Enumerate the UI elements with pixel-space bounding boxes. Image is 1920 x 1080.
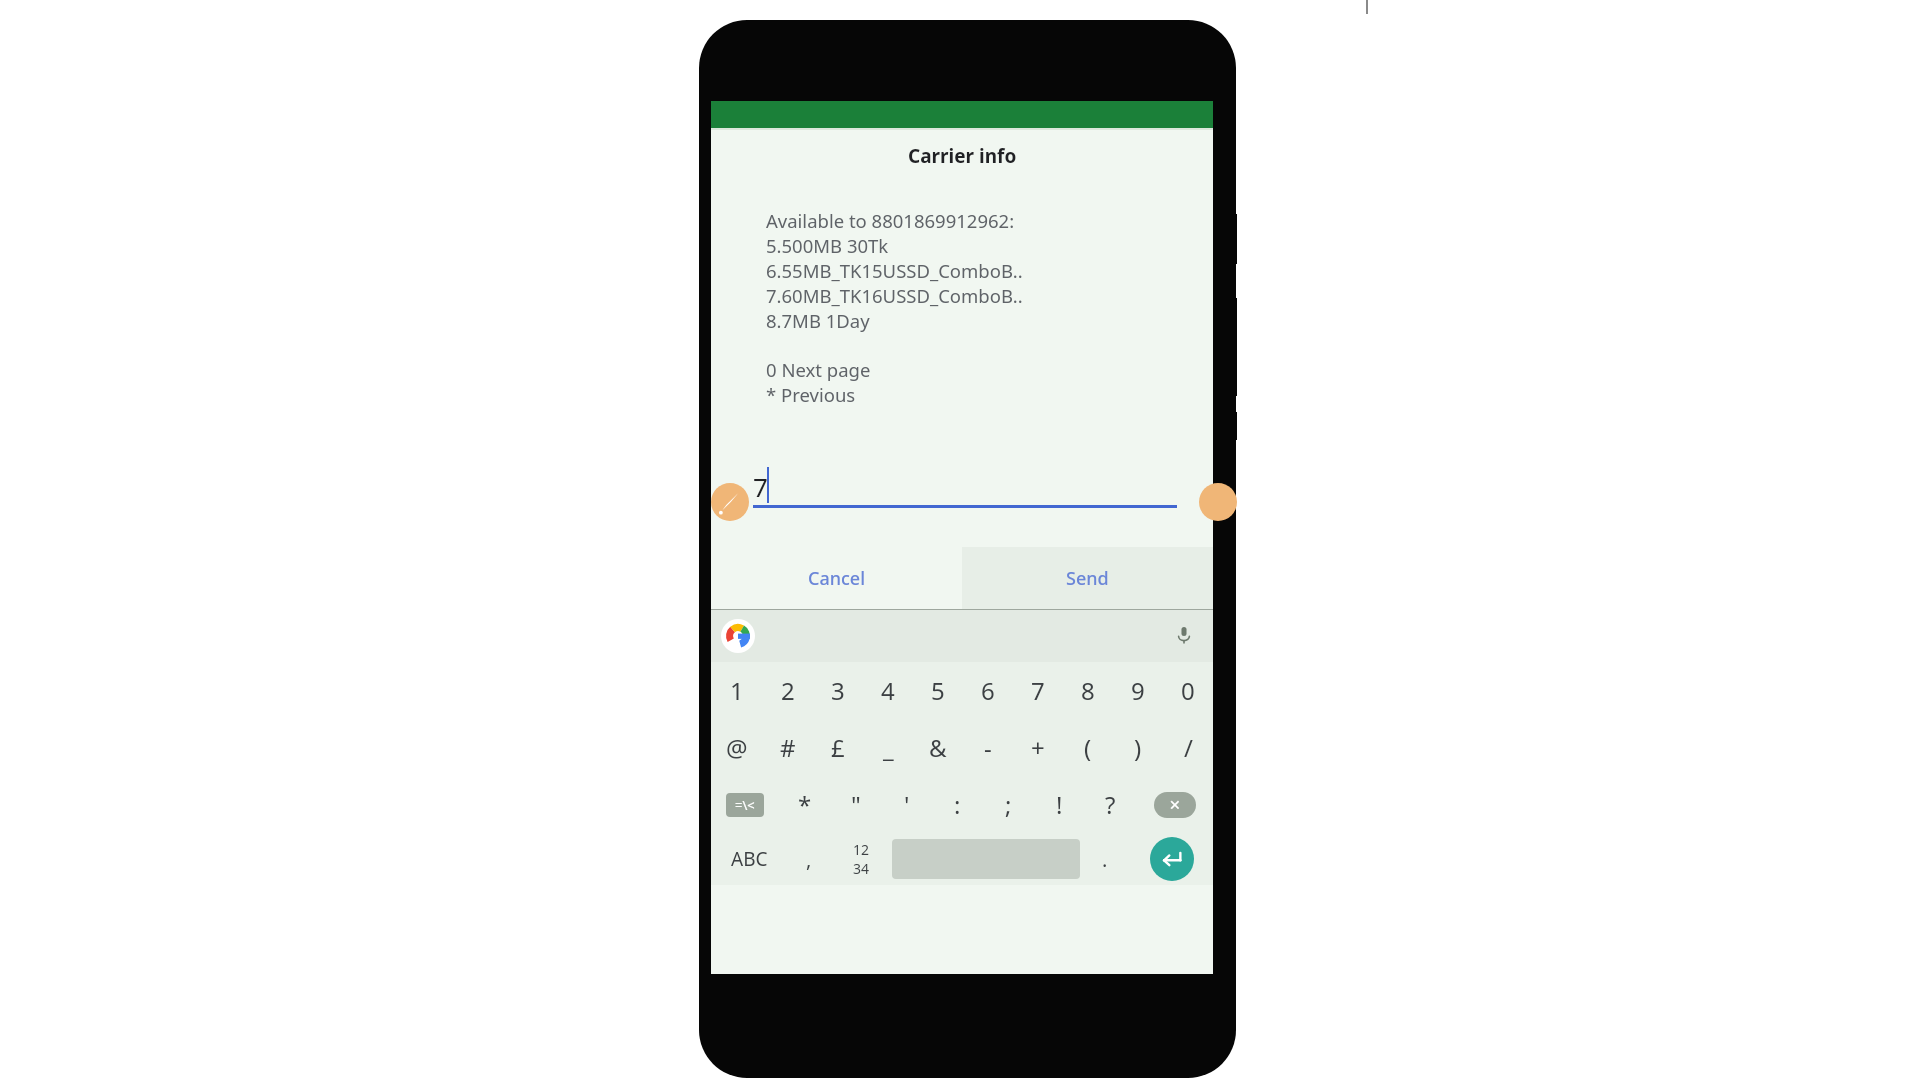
staticText: 9 xyxy=(1131,674,1145,707)
button[interactable]: Voice input xyxy=(1169,621,1199,651)
button[interactable]: 8 xyxy=(1063,662,1113,719)
staticText: @ xyxy=(726,731,748,764)
button[interactable]: & xyxy=(913,719,963,776)
staticText: 0 xyxy=(1181,674,1195,707)
button[interactable]: " xyxy=(830,776,881,833)
staticText: " xyxy=(851,788,861,821)
button[interactable]: 7 xyxy=(1013,662,1063,719)
staticText: 8 xyxy=(1081,674,1095,707)
button[interactable]: + xyxy=(1013,719,1063,776)
staticText: * Previous xyxy=(766,382,856,407)
button[interactable]: ? xyxy=(1085,776,1136,833)
button[interactable]: Tool xyxy=(1199,483,1237,521)
staticText: - xyxy=(984,731,992,764)
button[interactable]: Drawing tool xyxy=(711,483,749,521)
staticText: 3 xyxy=(831,674,845,707)
button[interactable]: ) xyxy=(1113,719,1163,776)
staticText: ) xyxy=(1134,731,1142,764)
staticText: ; xyxy=(1005,788,1012,821)
staticText: =\< xyxy=(735,796,755,814)
staticText: £ xyxy=(831,731,845,764)
button[interactable]: 9 xyxy=(1113,662,1163,719)
button[interactable]: 1 xyxy=(711,662,762,719)
staticText: 34 xyxy=(853,859,870,878)
button[interactable]: ( xyxy=(1063,719,1113,776)
staticText: Cancel xyxy=(808,566,866,591)
staticText: 8.7MB 1Day xyxy=(766,308,870,333)
staticText: ABC xyxy=(731,846,768,872)
button[interactable]: 3 xyxy=(813,662,863,719)
staticText: ✕ xyxy=(1169,797,1181,813)
button[interactable]: # xyxy=(762,719,813,776)
staticText: 5 xyxy=(931,674,945,707)
staticText: 6.55MB_TK15USSD_ComboB.. xyxy=(766,258,1023,283)
staticText: 7 xyxy=(1031,674,1045,707)
button[interactable]: Send xyxy=(962,547,1213,609)
staticText: ! xyxy=(1056,788,1063,821)
button[interactable]: ABC xyxy=(711,833,787,885)
staticText: Available to 8801869912962: xyxy=(766,208,1015,233)
staticText: ? xyxy=(1105,788,1116,821)
staticText: : xyxy=(954,788,961,821)
button[interactable]: ! xyxy=(1034,776,1085,833)
staticText: 6 xyxy=(981,674,995,707)
button[interactable]: £ xyxy=(813,719,863,776)
button[interactable]: ; xyxy=(983,776,1034,833)
staticText: ' xyxy=(904,788,910,821)
button[interactable]: * xyxy=(779,776,830,833)
button[interactable]: 12 xyxy=(831,833,892,885)
staticText: * xyxy=(798,788,812,821)
staticText: 0 Next page xyxy=(766,357,871,382)
button[interactable]: 4 xyxy=(863,662,913,719)
staticText: 7 xyxy=(753,469,768,504)
button[interactable]: @ xyxy=(711,719,762,776)
button[interactable]: =\< xyxy=(711,776,779,833)
staticText: . xyxy=(1102,846,1108,873)
button[interactable]: . xyxy=(1080,833,1130,885)
staticText: # xyxy=(780,731,796,764)
staticText: ( xyxy=(1084,731,1092,764)
staticText: + xyxy=(1031,731,1045,764)
button[interactable]: Cancel xyxy=(711,547,962,609)
button[interactable]: 5 xyxy=(913,662,963,719)
button[interactable]: Backspace xyxy=(1136,776,1213,833)
button[interactable]: 0 xyxy=(1163,662,1213,719)
staticText: , xyxy=(806,846,812,873)
staticText: 7.60MB_TK16USSD_ComboB.. xyxy=(766,283,1023,308)
button[interactable]: : xyxy=(932,776,983,833)
button[interactable]: Google xyxy=(721,619,755,653)
staticText: 12 xyxy=(853,840,870,859)
button[interactable]: Enter xyxy=(1130,833,1213,885)
staticText: / xyxy=(1184,731,1193,764)
staticText: 5.500MB 30Tk xyxy=(766,233,889,258)
staticText: _ xyxy=(883,731,894,764)
staticText: 2 xyxy=(781,674,795,707)
staticText: Carrier info xyxy=(908,143,1017,169)
staticText: Send xyxy=(1066,566,1109,591)
staticText: & xyxy=(929,731,947,764)
button[interactable]: 2 xyxy=(762,662,813,719)
button[interactable]: 6 xyxy=(963,662,1013,719)
button[interactable]: _ xyxy=(863,719,913,776)
button[interactable]: , xyxy=(787,833,831,885)
button[interactable]: / xyxy=(1163,719,1213,776)
staticText: 1 xyxy=(730,674,744,707)
staticText: 4 xyxy=(881,674,895,707)
button[interactable]: ' xyxy=(881,776,932,833)
button[interactable]: - xyxy=(963,719,1013,776)
